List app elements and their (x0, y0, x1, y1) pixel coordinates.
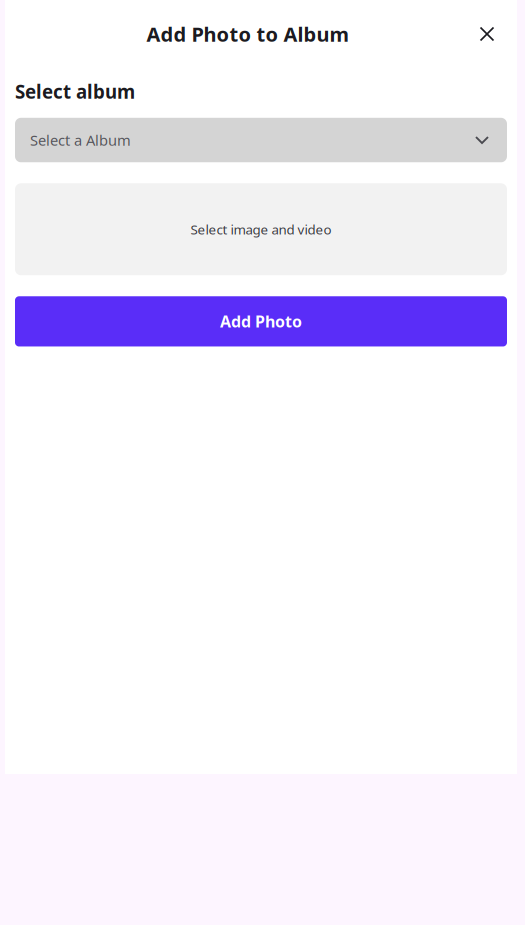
button[interactable]: Add Photo (15, 296, 507, 346)
button[interactable]: Close (472, 19, 502, 49)
staticText: Select album (15, 79, 135, 104)
staticText: Add Photo (220, 311, 302, 332)
button[interactable]: Select image and video (15, 183, 507, 275)
staticText: Add Photo to Album (146, 21, 349, 47)
staticText: Select a Album (30, 130, 131, 150)
button[interactable]: Select a Album (15, 118, 507, 162)
staticText: Select image and video (190, 220, 331, 238)
